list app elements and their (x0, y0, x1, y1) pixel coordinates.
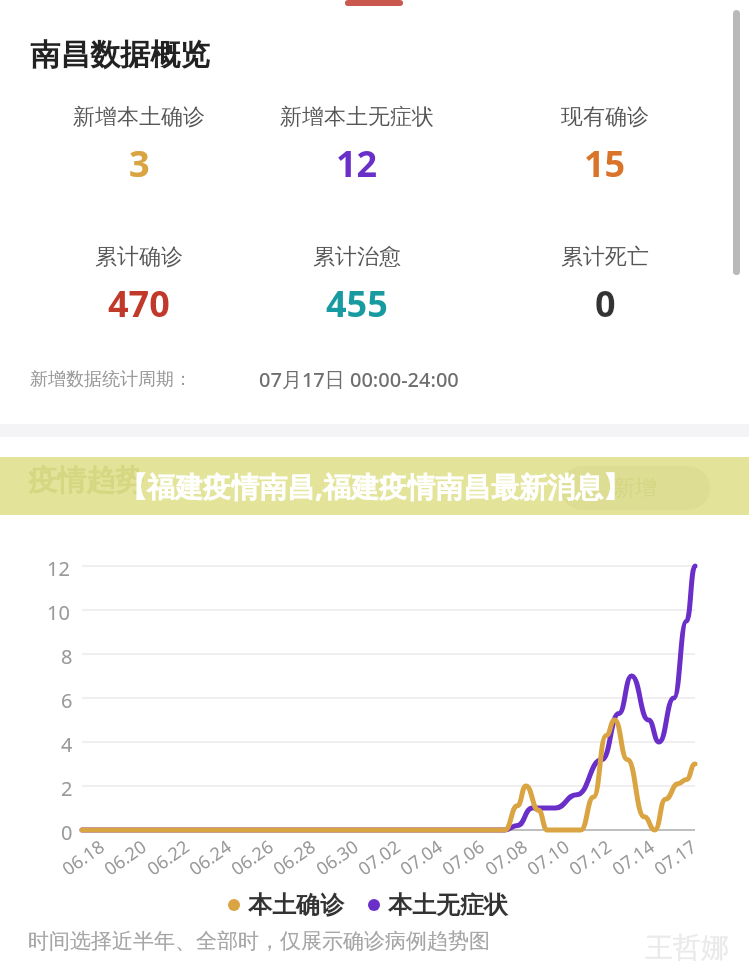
staticText: 10 (47, 599, 70, 626)
staticText: 470 (108, 279, 170, 328)
staticText: 累计死亡 (561, 243, 649, 271)
staticText: 06.20 (99, 834, 152, 881)
staticText: 06.28 (268, 834, 321, 881)
staticText: 07.10 (522, 834, 575, 881)
staticText: 06.30 (311, 834, 364, 881)
staticText: 06.26 (226, 834, 279, 881)
staticText: 12 (336, 139, 378, 188)
staticText: 新增本土无症状 (280, 103, 434, 131)
staticText: 6 (61, 687, 73, 714)
staticText: 4 (61, 731, 73, 758)
staticText: 新增 (613, 474, 657, 502)
staticText: 王哲娜 (645, 930, 729, 965)
staticText: 3 (129, 139, 150, 188)
staticText: 12 (47, 555, 70, 582)
staticText: 07.02 (353, 834, 406, 881)
staticText: 07.06 (437, 834, 490, 881)
staticText: 累计确诊 (95, 243, 183, 271)
staticText: 06.18 (57, 834, 110, 881)
staticText: 疫情趋势 (28, 462, 144, 499)
button[interactable]: 现有确诊 (496, 103, 714, 188)
staticText: 0 (61, 819, 73, 846)
staticText: 15 (584, 139, 626, 188)
button[interactable]: 新增本土无症状 (248, 103, 466, 188)
staticText: 南昌数据概览 (30, 36, 210, 74)
staticText: 06.24 (184, 834, 237, 881)
staticText: 07.14 (607, 834, 660, 881)
staticText: 455 (326, 279, 388, 328)
staticText: 新增本土确诊 (73, 103, 205, 131)
button[interactable]: 累计治愈 (248, 243, 466, 328)
button[interactable]: 累计确诊 (30, 243, 248, 328)
staticText: 07.08 (480, 834, 533, 881)
staticText: 0 (595, 279, 616, 328)
button[interactable]: 本土无症状 (368, 890, 508, 920)
button[interactable]: 新增 (560, 466, 710, 510)
staticText: 07.17 (649, 834, 702, 881)
button[interactable]: 累计死亡 (496, 243, 714, 328)
staticText: 06.22 (142, 834, 195, 881)
staticText: 07.04 (395, 834, 448, 881)
staticText: 时间选择近半年、全部时，仅展示确诊病例趋势图 (28, 928, 490, 954)
staticText: 8 (61, 643, 73, 670)
staticText: 本土确诊 (248, 890, 344, 920)
staticText: 累计治愈 (313, 243, 401, 271)
button[interactable]: 本土确诊 (228, 890, 344, 920)
staticText: 2 (61, 775, 73, 802)
staticText: 【福建疫情南昌,福建疫情南昌最新消息】 (119, 467, 631, 505)
staticText: 现有确诊 (561, 103, 649, 131)
staticText: 本土无症状 (388, 890, 508, 920)
button[interactable]: Tab indicator (345, 0, 403, 6)
staticText: 07.12 (564, 834, 617, 881)
staticText: 新增数据统计周期： (30, 368, 192, 391)
staticText: 07月17日 00:00-24:00 (259, 366, 459, 393)
button[interactable]: 新增本土确诊 (30, 103, 248, 188)
